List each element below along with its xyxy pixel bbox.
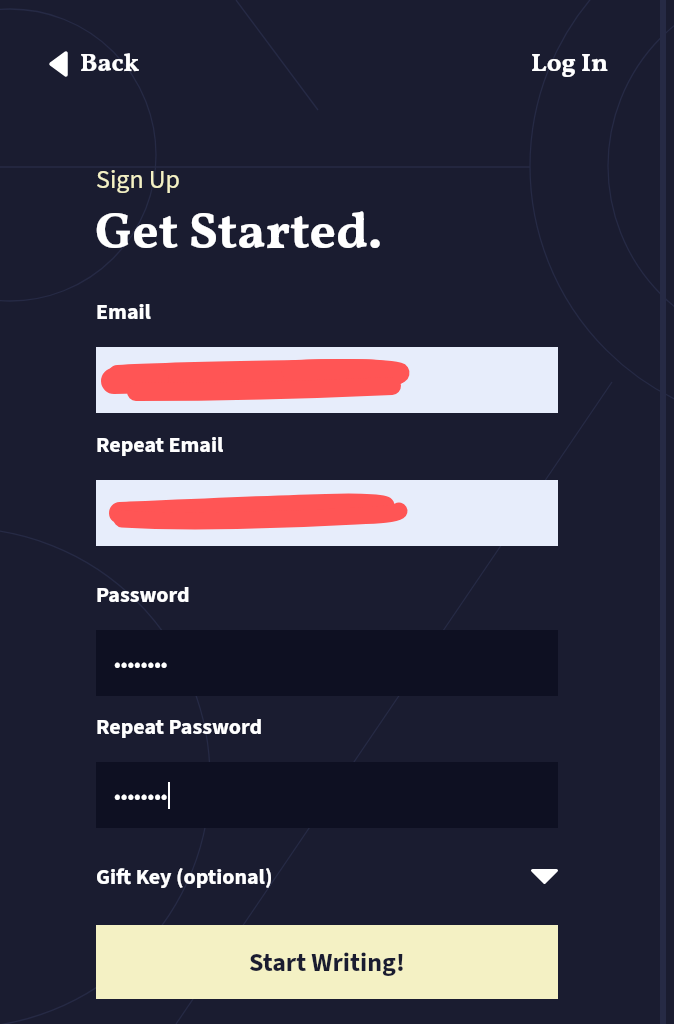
other: Expand gift key field — [531, 869, 558, 884]
button[interactable] — [96, 480, 558, 546]
staticText: •••••••• — [114, 780, 168, 811]
staticText: Repeat Password — [96, 711, 263, 742]
staticText: Back — [80, 46, 140, 82]
staticText: Get Started. — [95, 198, 383, 270]
staticText: Password — [96, 579, 190, 610]
button[interactable]: Log In — [518, 43, 622, 85]
button[interactable]: Back — [44, 43, 146, 85]
staticText: Start Writing! — [249, 944, 405, 981]
staticText: Email — [96, 296, 151, 327]
staticText: Log In — [531, 46, 609, 82]
button[interactable]: •••••••• — [96, 630, 558, 696]
staticText: •••••••• — [114, 648, 168, 679]
staticText: Repeat Email — [96, 429, 224, 460]
button[interactable]: •••••••• — [96, 762, 558, 828]
staticText: Gift Key (optional) — [96, 861, 273, 892]
button[interactable]: Start Writing! — [96, 925, 558, 999]
staticText: Sign Up — [96, 161, 181, 198]
button[interactable]: Gift Key (optional) — [96, 856, 558, 896]
button[interactable] — [96, 347, 558, 413]
